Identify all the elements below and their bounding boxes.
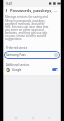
button[interactable]: Samsung Pass xyxy=(4,51,60,59)
staticText: Additional services xyxy=(6,63,30,67)
button[interactable]: Google autofill toggle xyxy=(52,68,58,71)
staticText: Manage services for saving and filling i… xyxy=(5,15,51,40)
staticText: Passwords, passkeys, and autofill xyxy=(10,8,59,13)
staticText: Google xyxy=(12,68,22,72)
staticText: 9:41 xyxy=(6,2,13,6)
staticText: Samsung Pass xyxy=(6,53,26,57)
button[interactable]: Back xyxy=(4,8,9,13)
button[interactable]: Back xyxy=(45,114,52,121)
button[interactable]: Home xyxy=(29,114,36,121)
button[interactable]: Recent apps xyxy=(12,114,19,121)
button[interactable]: Google xyxy=(3,66,61,73)
staticText: Preferred service xyxy=(6,46,28,50)
